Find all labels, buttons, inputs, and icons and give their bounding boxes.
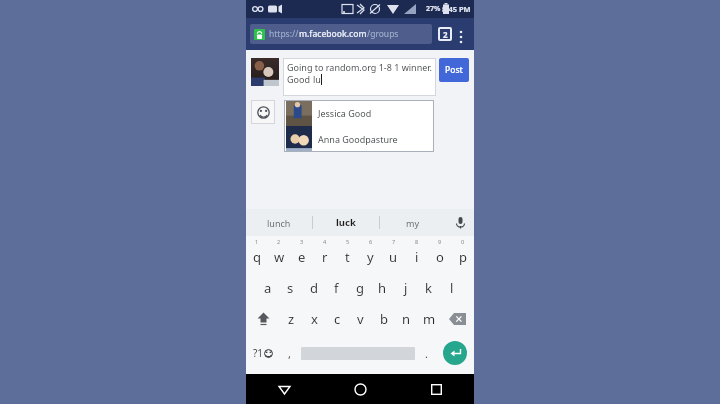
button[interactable]: 0 [451, 236, 474, 272]
staticText: c [334, 310, 341, 328]
button[interactable]: Emoji [251, 100, 275, 124]
staticText: Jessica Good [318, 107, 372, 119]
staticText: lunch [267, 217, 291, 229]
staticText: 0 [461, 238, 465, 245]
staticText: r [322, 248, 328, 266]
button[interactable]: 5 [336, 236, 359, 272]
button[interactable]: 3 [290, 236, 313, 272]
button[interactable]: m [418, 303, 441, 334]
staticText: u [389, 248, 398, 266]
button[interactable]: luck [313, 209, 379, 236]
staticText: j [404, 279, 408, 297]
button[interactable]: Jessica Good [284, 100, 434, 126]
staticText: n [402, 310, 411, 328]
button[interactable]: c [326, 303, 349, 334]
staticText: 7 [392, 238, 396, 245]
staticText: b [380, 310, 388, 328]
staticText: l [450, 279, 454, 297]
button[interactable]: d [302, 272, 325, 303]
staticText: m.facebook.com [299, 28, 367, 40]
staticText: Anna Goodpasture [318, 133, 398, 145]
staticText: p [459, 248, 467, 266]
staticText: 3 [300, 238, 304, 245]
staticText: lu [313, 73, 321, 85]
button[interactable]: b [372, 303, 395, 334]
button[interactable]: Recents [398, 374, 474, 404]
staticText: i [415, 248, 419, 266]
button[interactable]: x [303, 303, 326, 334]
staticText: f [334, 279, 339, 297]
button[interactable]: More options [452, 21, 470, 47]
button[interactable]: g [348, 272, 371, 303]
staticText: luck [336, 216, 356, 229]
button[interactable]: 8 [405, 236, 428, 272]
staticText: z [288, 310, 295, 328]
button[interactable]: , [280, 334, 299, 372]
staticText: 5 [346, 238, 350, 245]
button[interactable]: lunch [246, 209, 312, 236]
button[interactable]: 9 [428, 236, 451, 272]
button[interactable]: Enter [443, 341, 467, 365]
button[interactable]: s [279, 272, 302, 303]
button[interactable]: h [371, 272, 394, 303]
staticText: 4 [323, 238, 327, 245]
button[interactable]: j [394, 272, 417, 303]
staticText: w [274, 248, 285, 266]
staticText: k [425, 279, 432, 297]
staticText: g [356, 279, 364, 297]
button[interactable]: https:// [250, 24, 432, 44]
button[interactable]: Backspace [441, 303, 474, 334]
staticText: a [264, 279, 272, 297]
button[interactable]: Voice input [446, 209, 474, 236]
staticText: t [345, 248, 350, 266]
button[interactable]: 1 [246, 236, 268, 272]
button[interactable]: a [256, 272, 279, 303]
button[interactable]: f [325, 272, 348, 303]
staticText: y [367, 248, 374, 266]
staticText: x [311, 310, 318, 328]
staticText: 8 [415, 238, 419, 245]
staticText: 8:45 PM [442, 4, 471, 14]
button[interactable]: 6 [359, 236, 382, 272]
button[interactable]: ?1 [246, 334, 280, 372]
staticText: v [357, 310, 364, 328]
staticText: o [436, 248, 444, 266]
button[interactable]: 7 [382, 236, 405, 272]
staticText: . [425, 346, 428, 361]
button[interactable]: my [380, 209, 446, 236]
staticText: 9 [438, 238, 442, 245]
staticText: 2 [443, 29, 448, 40]
button[interactable]: Post [439, 58, 469, 82]
button[interactable]: Shift [246, 303, 280, 334]
staticText: 27% [426, 4, 441, 14]
button[interactable]: . [417, 334, 436, 372]
button[interactable]: z [280, 303, 303, 334]
button[interactable]: Going to random.org 1-8 1 winner. [283, 58, 436, 96]
button[interactable]: Anna Goodpasture [284, 126, 434, 152]
staticText: e [298, 248, 306, 266]
button[interactable]: l [440, 272, 463, 303]
staticText: , [288, 346, 291, 361]
button[interactable]: 2 [268, 236, 290, 272]
staticText: s [287, 279, 294, 297]
staticText: https:// [269, 28, 299, 40]
staticText: m [423, 310, 436, 328]
button[interactable]: n [395, 303, 418, 334]
staticText: my [406, 217, 420, 229]
staticText: 2 [277, 238, 281, 245]
staticText: Good [287, 73, 313, 85]
staticText: Post [445, 64, 463, 76]
staticText: h [378, 279, 387, 297]
staticText: q [253, 248, 261, 266]
button[interactable]: k [417, 272, 440, 303]
staticText: 1 [255, 238, 259, 245]
staticText: d [310, 279, 318, 297]
button[interactable]: v [349, 303, 372, 334]
staticText: 6 [369, 238, 373, 245]
button[interactable]: Tabs [438, 27, 452, 41]
button[interactable]: 4 [313, 236, 336, 272]
staticText: /groups [367, 28, 399, 40]
button[interactable]: Home [322, 374, 398, 404]
button[interactable]: Back [246, 374, 322, 404]
